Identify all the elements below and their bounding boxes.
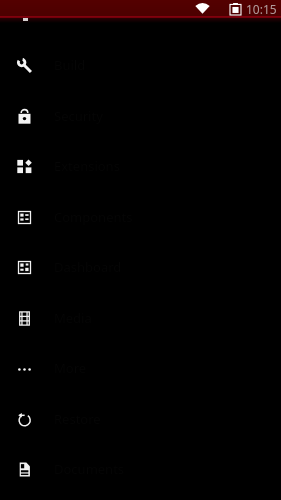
button[interactable]: Media [0, 293, 281, 343]
button[interactable]: Security [0, 91, 281, 141]
button[interactable]: Extensions [0, 141, 281, 191]
button[interactable]: Components [0, 192, 281, 242]
staticText: 10:15 [246, 1, 277, 17]
button[interactable]: Dashboard [0, 242, 281, 292]
button[interactable]: More [0, 343, 281, 393]
other: Battery [230, 3, 241, 15]
button[interactable]: Build [0, 40, 281, 90]
other: Wi-Fi [195, 2, 210, 14]
button[interactable]: Documents [0, 444, 281, 494]
button[interactable]: Restore [0, 394, 281, 444]
